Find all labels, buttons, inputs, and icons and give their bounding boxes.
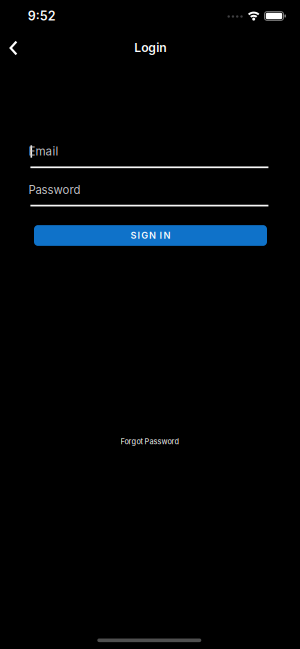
button[interactable]: Email	[30, 138, 268, 168]
staticText: Password	[28, 183, 80, 197]
staticText: Login	[134, 40, 166, 55]
button[interactable]: SIGN IN	[34, 225, 267, 246]
button[interactable]: Forgot Password	[120, 437, 179, 446]
staticText: SIGN IN	[131, 230, 170, 241]
staticText: Email	[29, 144, 59, 158]
button[interactable]: Password	[30, 176, 268, 206]
staticText: Forgot Password	[120, 437, 179, 446]
button[interactable]: Back	[0, 38, 30, 58]
staticText: 9:52	[28, 8, 56, 24]
